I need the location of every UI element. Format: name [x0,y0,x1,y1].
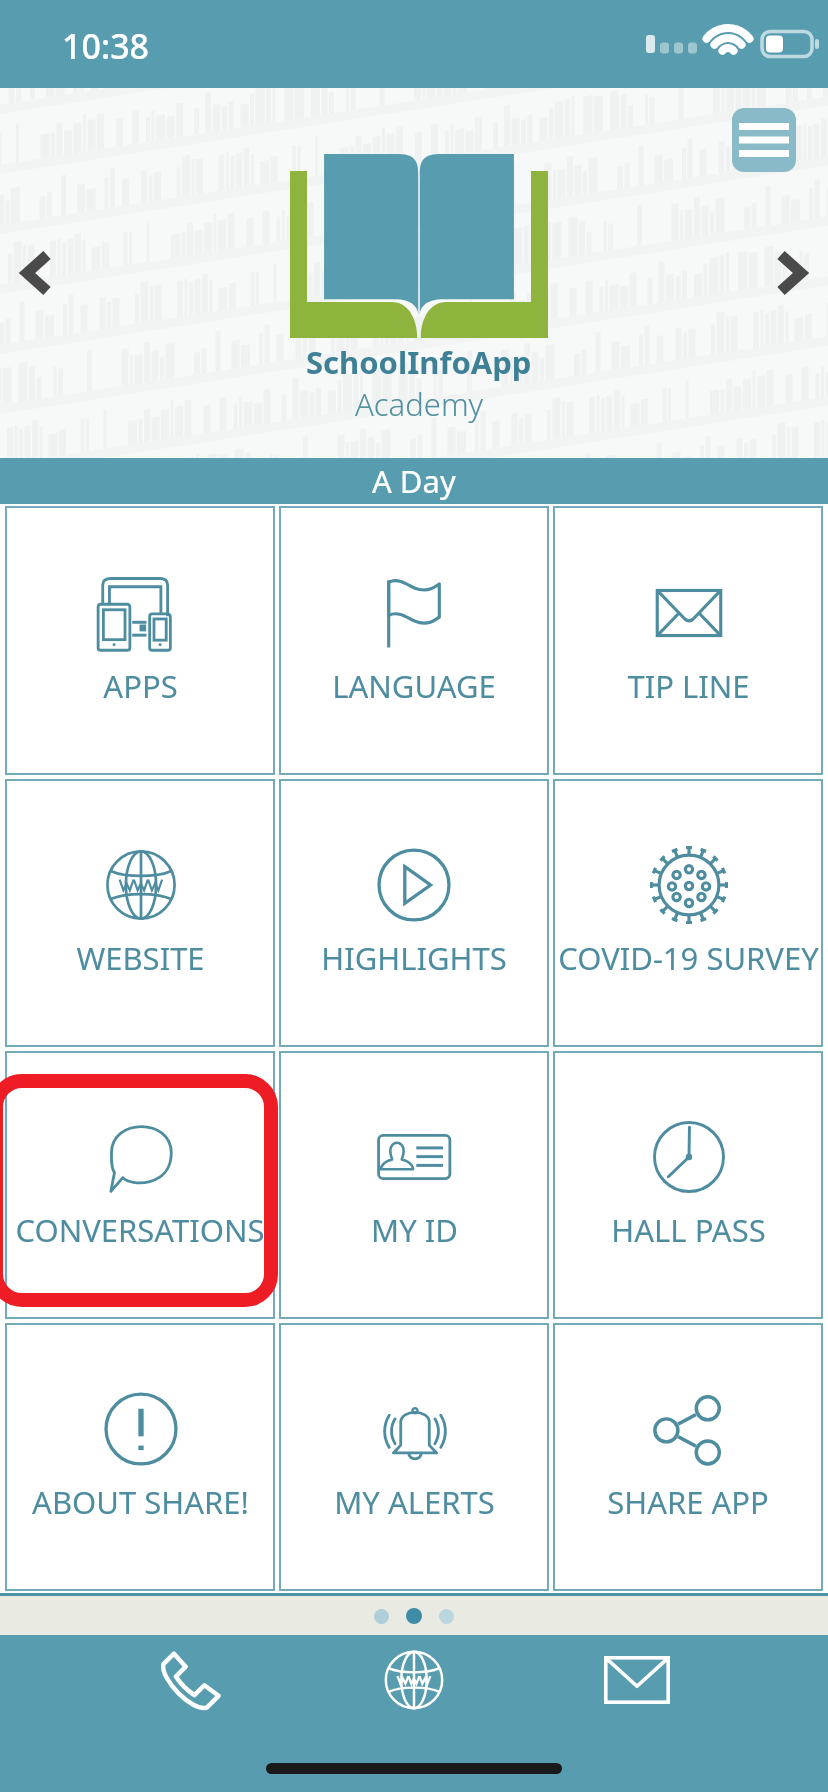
staticText: MY ID [371,1209,458,1251]
button[interactable]: COVID-19 SURVEY [553,779,823,1047]
staticText: SHARE APP [607,1481,769,1523]
staticText: COVID-19 SURVEY [558,937,819,979]
button[interactable]: LANGUAGE [279,506,549,775]
button[interactable]: Website [359,1635,469,1725]
button[interactable]: Menu [732,108,796,172]
staticText: CONVERSATIONS [15,1209,265,1251]
staticText: WEBSITE [76,937,205,979]
staticText: HALL PASS [611,1209,766,1251]
staticText: ABOUT SHARE! [32,1481,249,1523]
staticText: APPS [103,665,178,707]
staticText: SchoolInfoApp [306,341,532,383]
button[interactable]: Email [582,1635,692,1725]
button[interactable]: WEBSITE [5,779,275,1047]
staticText: Academy [355,383,484,425]
button[interactable]: Next [760,242,822,304]
button[interactable]: SHARE APP [553,1323,823,1591]
button[interactable]: HALL PASS [553,1051,823,1319]
button[interactable]: Call [136,1635,246,1725]
button[interactable]: CONVERSATIONS [5,1051,275,1319]
staticText: HIGHLIGHTS [321,937,507,979]
button[interactable]: TIP LINE [553,506,823,775]
button[interactable]: Previous [6,242,68,304]
button[interactable]: MY ALERTS [279,1323,549,1591]
button[interactable]: MY ID [279,1051,549,1319]
staticText: TIP LINE [627,665,750,707]
button[interactable]: APPS [5,506,275,775]
staticText: A Day [372,460,456,502]
staticText: 10:38 [62,23,150,69]
staticText: MY ALERTS [334,1481,495,1523]
button[interactable]: ABOUT SHARE! [5,1323,275,1591]
button[interactable]: HIGHLIGHTS [279,779,549,1047]
staticText: LANGUAGE [332,665,496,707]
